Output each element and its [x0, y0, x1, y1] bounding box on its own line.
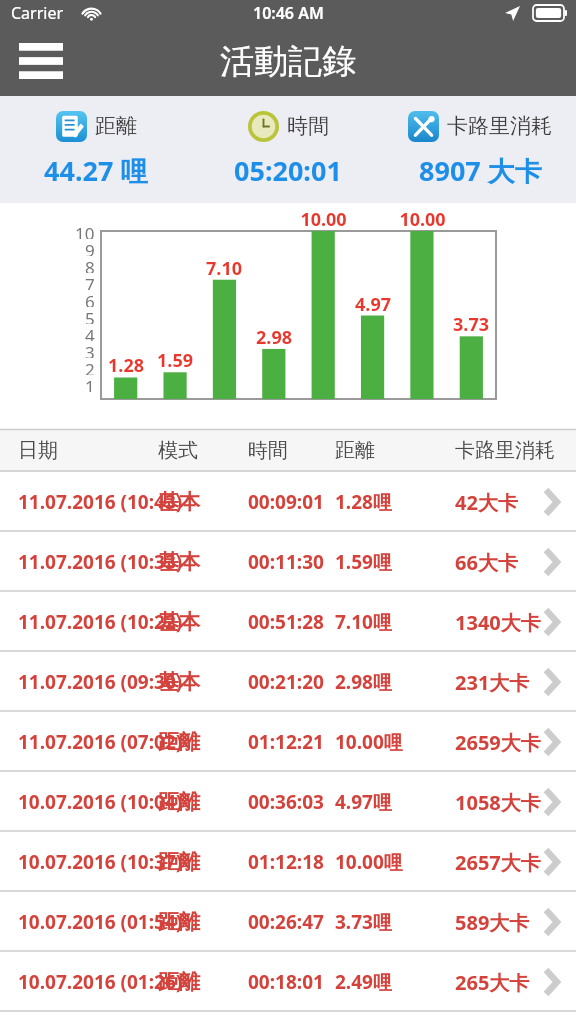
staticText: 4: [85, 324, 95, 341]
staticText: 05:20:01: [234, 152, 342, 189]
staticText: 265大卡: [455, 969, 530, 996]
staticText: 00:09:01: [248, 489, 324, 515]
staticText: 距離: [158, 789, 200, 815]
staticText: 基本: [158, 609, 200, 635]
staticText: 00:51:28: [248, 609, 324, 635]
staticText: 11.07.2016 (10:22): [18, 609, 183, 635]
staticText: 模式: [158, 438, 198, 463]
staticText: 10: [75, 222, 95, 239]
staticText: 距離: [158, 969, 200, 995]
staticText: 66大卡: [455, 549, 518, 576]
staticText: 時間: [248, 438, 288, 463]
staticText: 2657大卡: [455, 849, 541, 876]
staticText: 10.07.2016 (01:54): [18, 909, 183, 935]
staticText: 距離: [158, 849, 200, 875]
button[interactable]: 11.07.2016 (10:22): [0, 592, 576, 652]
staticText: 活動記錄: [220, 40, 356, 83]
staticText: 3.73哩: [335, 909, 392, 935]
staticText: 基本: [158, 669, 200, 695]
staticText: 距離: [158, 909, 200, 935]
staticText: 8: [85, 256, 95, 273]
staticText: 3.73: [453, 312, 489, 337]
staticText: 10.00哩: [335, 729, 403, 755]
staticText: 42大卡: [455, 489, 518, 516]
button[interactable]: 10.07.2016 (01:26): [0, 952, 576, 1012]
button[interactable]: Menu: [12, 32, 70, 90]
staticText: 10.00哩: [335, 849, 403, 875]
staticText: 1.28: [108, 353, 144, 378]
staticText: 基本: [158, 549, 200, 575]
staticText: 10.00: [399, 207, 446, 232]
staticText: 231大卡: [455, 669, 530, 696]
button[interactable]: 10.07.2016 (10:04): [0, 772, 576, 832]
staticText: 距離: [158, 729, 200, 755]
staticText: 1340大卡: [455, 609, 541, 636]
staticText: 2.49哩: [335, 969, 392, 995]
button[interactable]: 10.07.2016 (01:54): [0, 892, 576, 952]
staticText: 基本: [158, 489, 200, 515]
staticText: 10.00: [300, 207, 347, 232]
staticText: 00:21:20: [248, 669, 324, 695]
button[interactable]: 10.07.2016 (10:37): [0, 832, 576, 892]
staticText: 1.59哩: [335, 549, 392, 575]
staticText: 01:12:21: [248, 729, 324, 755]
staticText: 2.98哩: [335, 669, 392, 695]
staticText: 44.27 哩: [44, 152, 148, 189]
staticText: 3: [85, 341, 95, 358]
staticText: 11.07.2016 (07:02): [18, 729, 183, 755]
button[interactable]: 11.07.2016 (10:43): [0, 472, 576, 532]
staticText: 10.07.2016 (10:37): [18, 849, 183, 875]
staticText: 1058大卡: [455, 789, 541, 816]
staticText: 6: [85, 290, 95, 307]
staticText: 589大卡: [455, 909, 530, 936]
button[interactable]: 11.07.2016 (07:02): [0, 712, 576, 772]
staticText: 距離: [95, 113, 137, 139]
staticText: 01:12:18: [248, 849, 324, 875]
staticText: 2659大卡: [455, 729, 541, 756]
button[interactable]: 11.07.2016 (09:30): [0, 652, 576, 712]
button[interactable]: 11.07.2016 (10:33): [0, 532, 576, 592]
staticText: 1: [85, 375, 95, 392]
staticText: 11.07.2016 (10:33): [18, 549, 183, 575]
staticText: 5: [85, 307, 95, 324]
staticText: 11.07.2016 (09:30): [18, 669, 183, 695]
staticText: 時間: [287, 113, 329, 139]
staticText: 卡路里消耗: [455, 438, 555, 463]
staticText: 1.59: [157, 348, 193, 373]
staticText: 7.10哩: [335, 609, 392, 635]
staticText: 卡路里消耗: [447, 113, 552, 139]
staticText: 距離: [335, 438, 375, 463]
staticText: 7: [85, 273, 95, 290]
staticText: 10:46 AM: [253, 2, 324, 24]
staticText: 11.07.2016 (10:43): [18, 489, 183, 515]
staticText: 1.28哩: [335, 489, 392, 515]
staticText: 4.97: [355, 292, 391, 317]
staticText: 00:11:30: [248, 549, 324, 575]
staticText: 00:26:47: [248, 909, 324, 935]
staticText: 8907 大卡: [419, 152, 542, 189]
staticText: 2.98: [256, 325, 292, 350]
staticText: 7.10: [206, 256, 242, 281]
staticText: Carrier: [11, 2, 64, 24]
staticText: 00:36:03: [248, 789, 324, 815]
staticText: 10.07.2016 (10:04): [18, 789, 183, 815]
staticText: 4.97哩: [335, 789, 392, 815]
staticText: 10.07.2016 (01:26): [18, 969, 183, 995]
staticText: 2: [85, 358, 95, 375]
staticText: 9: [85, 239, 95, 256]
staticText: 日期: [18, 438, 58, 463]
staticText: 00:18:01: [248, 969, 324, 995]
